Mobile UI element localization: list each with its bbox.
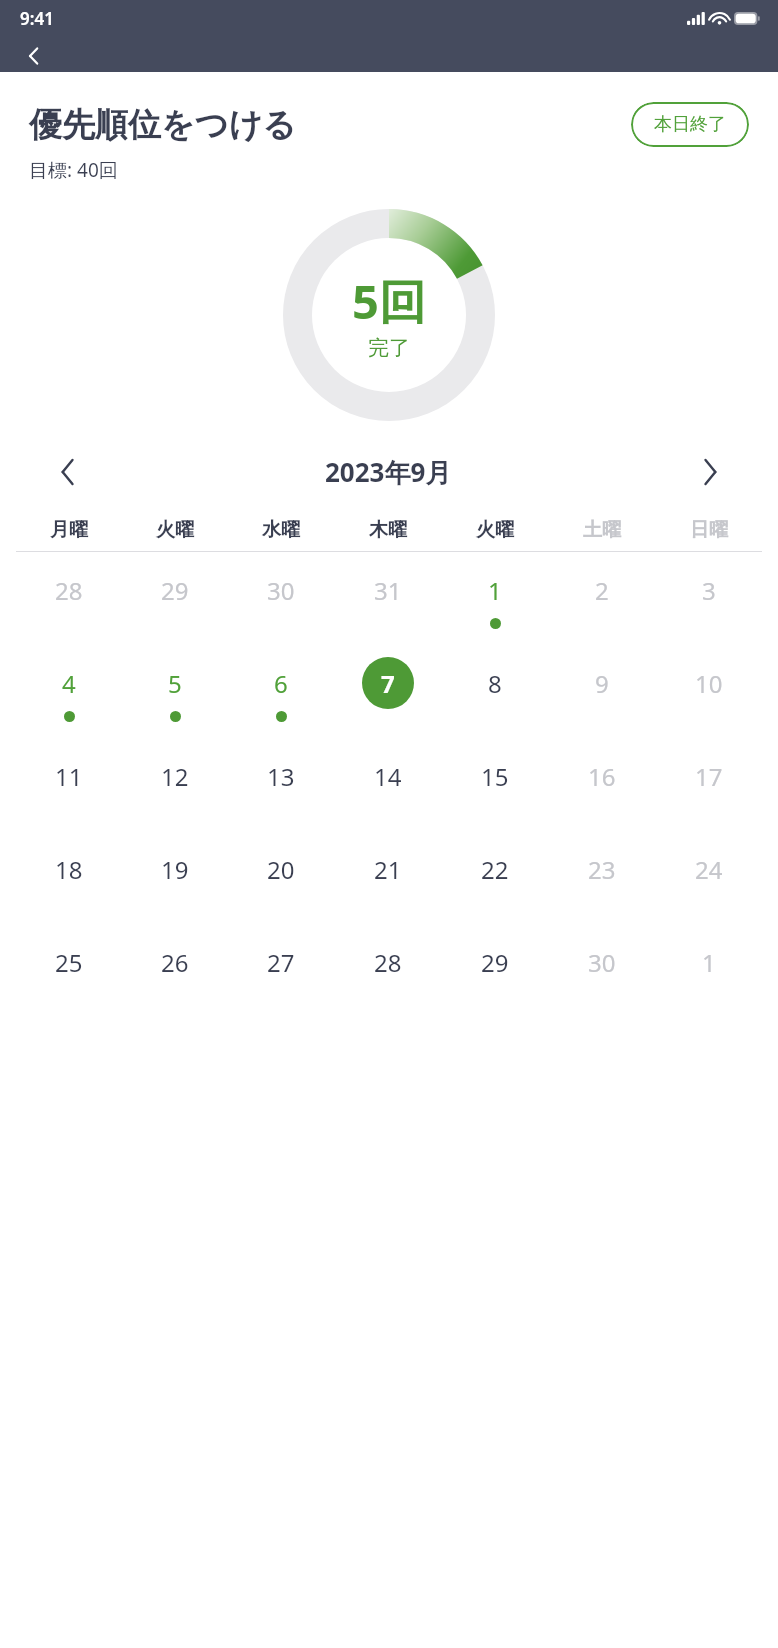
staticText: 6: [274, 667, 288, 700]
button[interactable]: 9: [548, 657, 655, 750]
button[interactable]: 26: [122, 936, 228, 1029]
button[interactable]: 10: [655, 657, 762, 750]
staticText: 13: [267, 760, 295, 793]
staticText: 15: [481, 760, 509, 793]
button[interactable]: 11: [16, 750, 122, 843]
staticText: 5: [168, 667, 182, 700]
staticText: 14: [374, 760, 402, 793]
staticText: 19: [161, 853, 189, 886]
button[interactable]: 13: [228, 750, 334, 843]
staticText: 木曜: [369, 518, 407, 542]
staticText: 本日終了: [654, 113, 726, 136]
button[interactable]: 24: [655, 843, 762, 936]
staticText: 7: [381, 667, 395, 700]
button[interactable]: 8: [441, 657, 548, 750]
staticText: 2023年9月: [325, 454, 452, 490]
button[interactable]: 30: [548, 936, 655, 1029]
button[interactable]: 3: [655, 564, 762, 657]
button[interactable]: Back: [14, 36, 54, 76]
button[interactable]: 28: [16, 564, 122, 657]
button[interactable]: 25: [16, 936, 122, 1029]
staticText: 23: [588, 853, 616, 886]
staticText: 9: [595, 667, 609, 700]
staticText: 火曜: [156, 518, 194, 542]
staticText: 1: [488, 574, 502, 607]
button[interactable]: 19: [122, 843, 228, 936]
staticText: 目標: 40回: [29, 157, 118, 183]
staticText: 16: [588, 760, 616, 793]
staticText: 2: [595, 574, 609, 607]
staticText: 26: [161, 946, 189, 979]
button[interactable]: 28: [334, 936, 441, 1029]
button[interactable]: 23: [548, 843, 655, 936]
staticText: 1: [702, 946, 716, 979]
staticText: 18: [55, 853, 83, 886]
button[interactable]: 16: [548, 750, 655, 843]
staticText: 20: [267, 853, 295, 886]
staticText: 25: [55, 946, 83, 979]
button[interactable]: 20: [228, 843, 334, 936]
button[interactable]: 4: [16, 657, 122, 750]
staticText: 5回: [352, 269, 426, 333]
staticText: 9:41: [20, 7, 54, 30]
staticText: 10: [695, 667, 723, 700]
staticText: 12: [161, 760, 189, 793]
button[interactable]: 31: [334, 564, 441, 657]
button[interactable]: 21: [334, 843, 441, 936]
staticText: 22: [481, 853, 509, 886]
staticText: 月曜: [50, 518, 88, 542]
button[interactable]: 7: [334, 657, 441, 750]
staticText: 8: [488, 667, 502, 700]
button[interactable]: 29: [441, 936, 548, 1029]
button[interactable]: 本日終了: [631, 102, 749, 147]
staticText: 優先順位をつける: [29, 104, 297, 146]
staticText: 30: [267, 574, 295, 607]
button[interactable]: 2: [548, 564, 655, 657]
staticText: 水曜: [262, 518, 300, 542]
staticText: 日曜: [690, 518, 728, 542]
staticText: 3: [702, 574, 716, 607]
button[interactable]: 1: [441, 564, 548, 657]
staticText: 17: [695, 760, 723, 793]
button[interactable]: 15: [441, 750, 548, 843]
staticText: 27: [267, 946, 295, 979]
button[interactable]: 30: [228, 564, 334, 657]
button[interactable]: 17: [655, 750, 762, 843]
staticText: 29: [161, 574, 189, 607]
button[interactable]: 29: [122, 564, 228, 657]
staticText: 21: [374, 853, 402, 886]
staticText: 11: [55, 760, 83, 793]
staticText: 29: [481, 946, 509, 979]
staticText: 火曜: [476, 518, 514, 542]
staticText: 完了: [368, 335, 410, 361]
button[interactable]: 6: [228, 657, 334, 750]
button[interactable]: Previous month: [44, 448, 92, 496]
button[interactable]: 22: [441, 843, 548, 936]
staticText: 28: [374, 946, 402, 979]
button[interactable]: 27: [228, 936, 334, 1029]
staticText: 30: [588, 946, 616, 979]
staticText: 土曜: [583, 518, 621, 542]
button[interactable]: Next month: [686, 448, 734, 496]
staticText: 28: [55, 574, 83, 607]
staticText: 24: [695, 853, 723, 886]
button[interactable]: 1: [655, 936, 762, 1029]
staticText: 4: [62, 667, 76, 700]
button[interactable]: 14: [334, 750, 441, 843]
staticText: 31: [374, 574, 402, 607]
button[interactable]: 5: [122, 657, 228, 750]
button[interactable]: 12: [122, 750, 228, 843]
button[interactable]: 18: [16, 843, 122, 936]
